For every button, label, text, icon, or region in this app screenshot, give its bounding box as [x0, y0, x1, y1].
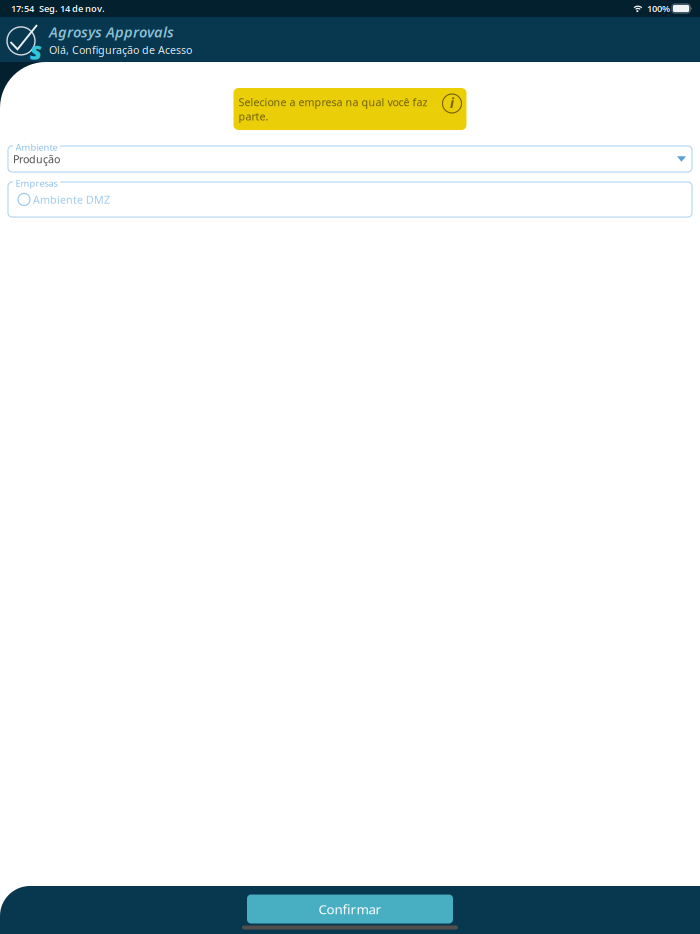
staticText: Ambiente DMZ: [33, 192, 110, 207]
staticText: i: [450, 94, 454, 112]
staticText: s: [30, 35, 42, 66]
button[interactable]: More information: [442, 93, 462, 113]
staticText: Seg. 14 de nov.: [39, 2, 105, 15]
staticText: Agrosys Approvals: [49, 22, 174, 42]
button[interactable]: Confirmar: [247, 894, 453, 923]
staticText: Produção: [13, 152, 60, 166]
staticText: 100%: [647, 2, 670, 15]
staticText: 17:54: [11, 2, 34, 15]
staticText: Empresas: [15, 177, 57, 189]
staticText: Olá, Configuração de Acesso: [49, 43, 192, 57]
staticText: Confirmar: [318, 900, 381, 918]
button[interactable]: Produção: [8, 146, 692, 172]
button[interactable]: Ambiente DMZ: [8, 182, 692, 217]
staticText: Ambiente: [15, 141, 57, 153]
staticText: Selecione a empresa na qual você faz par…: [238, 95, 427, 123]
